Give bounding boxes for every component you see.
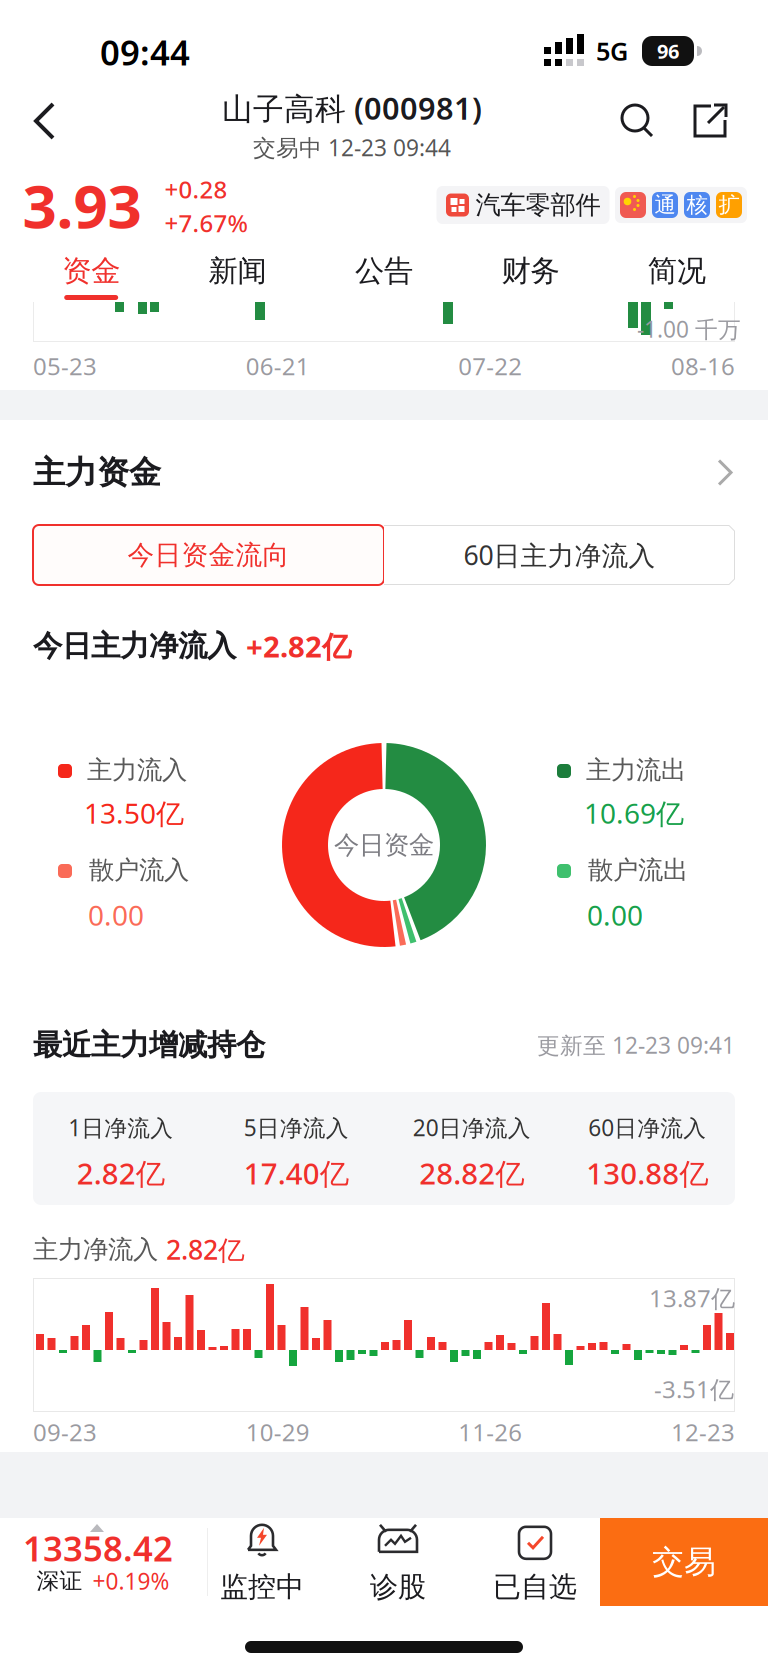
staticText: 监控中: [220, 1570, 304, 1604]
staticText: 07-22: [458, 350, 522, 382]
staticText: 最近主力增减持仓: [33, 1027, 265, 1063]
staticText: 06-21: [246, 350, 310, 382]
staticText: 今日主力净流入: [33, 628, 236, 664]
staticText: 08-16: [671, 350, 735, 382]
button[interactable]: 今日资金流向: [33, 525, 384, 585]
staticText: 0.00: [587, 896, 643, 934]
staticText: 5G: [596, 34, 628, 68]
staticText: 新闻: [209, 253, 267, 289]
staticText: 60日净流入: [588, 1112, 706, 1143]
staticText: 2.82亿: [77, 1154, 165, 1193]
button[interactable]: 简况: [604, 240, 750, 302]
button[interactable]: Back: [27, 100, 71, 144]
staticText: 13358.42: [23, 1525, 173, 1571]
staticText: 扩: [718, 192, 739, 218]
staticText: 交易: [652, 1542, 716, 1582]
staticText: 05-23: [33, 350, 97, 382]
staticText: 17.40亿: [244, 1154, 349, 1193]
staticText: 3.93: [22, 165, 141, 245]
button[interactable]: 13358.42: [0, 1518, 200, 1606]
staticText: 今日资金: [334, 829, 434, 860]
staticText: 13.87亿: [649, 1282, 735, 1314]
staticText: 主力流入: [87, 754, 187, 785]
staticText: +0.19%: [92, 1566, 169, 1596]
button[interactable]: 汽车零部件: [436, 186, 609, 224]
staticText: 山子高科 (000981): [222, 88, 482, 128]
staticText: 5日净流入: [244, 1112, 349, 1143]
button[interactable]: 新闻: [164, 240, 311, 302]
staticText: 0.00: [88, 896, 144, 934]
staticText: 13.50亿: [84, 794, 184, 832]
button[interactable]: 交易: [600, 1518, 768, 1606]
button[interactable]: 财务: [457, 240, 604, 302]
staticText: 2.82亿: [166, 1232, 245, 1267]
staticText: 资金: [62, 253, 120, 289]
button[interactable]: 资金: [18, 240, 164, 302]
staticText: 交易中 12-23 09:44: [253, 132, 451, 162]
staticText: +0.28: [164, 173, 227, 205]
staticText: 更新至 12-23 09:41: [537, 1030, 735, 1060]
staticText: 财务: [501, 253, 559, 289]
staticText: 诊股: [370, 1570, 426, 1604]
staticText: 汽车零部件: [475, 189, 600, 220]
staticText: 12-23: [671, 1416, 735, 1448]
button[interactable]: 公告: [311, 240, 457, 302]
staticText: 96: [657, 38, 679, 64]
staticText: 11-26: [458, 1416, 522, 1448]
staticText: 10-29: [246, 1416, 310, 1448]
button[interactable]: 主力资金: [0, 420, 768, 525]
staticText: 简况: [648, 253, 706, 289]
staticText: 10.69亿: [584, 794, 684, 832]
staticText: 核: [686, 192, 707, 218]
staticText: 已自选: [493, 1570, 577, 1604]
staticText: 60日主力净流入: [463, 537, 655, 573]
staticText: +2.82亿: [246, 626, 351, 665]
staticText: 主力资金: [33, 453, 161, 492]
staticText: -3.51亿: [654, 1373, 734, 1405]
button[interactable]: Search: [616, 99, 660, 143]
staticText: 28.82亿: [419, 1154, 524, 1193]
button[interactable]: Share: [687, 99, 731, 143]
staticText: 通: [654, 192, 675, 218]
staticText: 散户流出: [588, 854, 688, 885]
button[interactable]: 60日主力净流入: [384, 525, 735, 585]
staticText: +7.67%: [164, 207, 247, 239]
staticText: 20日净流入: [413, 1112, 531, 1143]
staticText: 深证: [36, 1567, 82, 1595]
button[interactable]: 监控中: [202, 1519, 322, 1607]
staticText: 130.88亿: [586, 1154, 708, 1193]
staticText: -1.00 千万: [637, 314, 741, 344]
staticText: 主力流出: [586, 754, 686, 785]
button[interactable]: 诊股: [338, 1519, 458, 1607]
staticText: 散户流入: [89, 854, 189, 885]
staticText: 今日资金流向: [127, 539, 289, 571]
staticText: 主力净流入: [33, 1234, 158, 1265]
staticText: 09:44: [100, 29, 190, 75]
button[interactable]: 已自选: [475, 1519, 595, 1607]
staticText: 公告: [355, 253, 413, 289]
staticText: 09-23: [33, 1416, 97, 1448]
staticText: 1日净流入: [68, 1112, 173, 1143]
